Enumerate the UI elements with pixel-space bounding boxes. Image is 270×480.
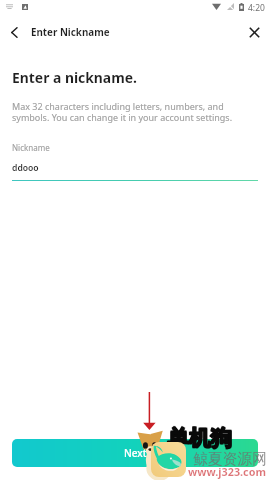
staticText: 单机狗 (167, 424, 232, 451)
staticText: 单机狗 (168, 425, 233, 452)
staticText: www.j323.com (188, 464, 266, 479)
button[interactable]: Next (12, 439, 258, 467)
staticText: 4:20 (248, 2, 265, 14)
staticText: 单机狗 (168, 424, 233, 451)
button[interactable]: Close (238, 15, 270, 49)
staticText: Max 32 characters including letters, num… (12, 100, 233, 124)
staticText: Nickname (12, 142, 50, 153)
staticText: 单机狗 (167, 425, 232, 452)
staticText: Enter a nickname. (12, 68, 137, 87)
staticText: Next (124, 446, 147, 460)
button[interactable]: Back (2, 15, 26, 49)
staticText: ddooo (12, 162, 39, 174)
staticText: 鲸夏资源网 (193, 450, 267, 469)
staticText: Enter Nickname (31, 26, 110, 39)
